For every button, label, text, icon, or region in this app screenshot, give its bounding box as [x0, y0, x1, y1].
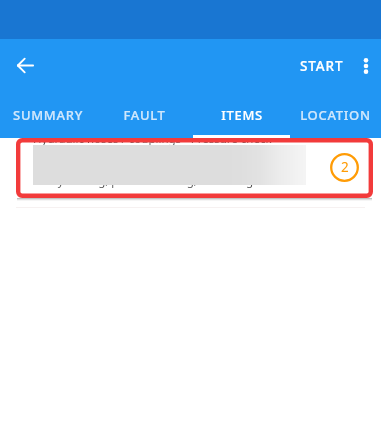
button[interactable]: 2 items: [330, 153, 359, 182]
button[interactable]: More options: [350, 50, 381, 81]
staticText: LOCATION: [300, 106, 371, 124]
staticText: ITEMS: [221, 106, 263, 124]
staticText: START: [300, 57, 344, 75]
button[interactable]: START: [286, 47, 350, 85]
staticText: Verify sealing, pressure rating, mountin…: [33, 173, 254, 189]
button[interactable]: FAULT: [96, 92, 193, 138]
button[interactable]: SUMMARY: [0, 92, 96, 138]
button[interactable]: Hydraulic hoses / couplings - Pressure c…: [16, 138, 373, 198]
staticText: SUMMARY: [13, 106, 83, 124]
staticText: FAULT: [123, 106, 166, 124]
staticText: Hydraulic hoses / couplings - Pressure c…: [33, 138, 272, 147]
button[interactable]: LOCATION: [290, 92, 380, 138]
staticText: 2: [341, 158, 349, 176]
button[interactable]: ITEMS: [193, 92, 290, 138]
button[interactable]: Back: [0, 42, 48, 90]
